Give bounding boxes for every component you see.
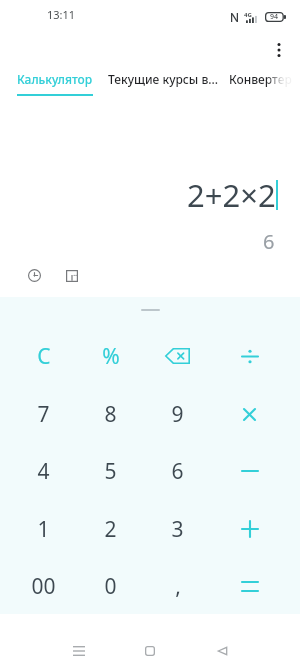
button[interactable]: Backspace <box>144 327 211 385</box>
staticText: 6 <box>171 457 184 486</box>
button[interactable]: 4 <box>10 442 77 500</box>
other: Plus <box>242 521 258 537</box>
staticText: 0 <box>104 572 117 601</box>
button[interactable]: , <box>144 557 211 615</box>
button[interactable]: Multiply <box>216 385 283 443</box>
staticText: 9 <box>171 400 184 429</box>
button[interactable]: Divide <box>216 327 283 385</box>
button[interactable]: Текущие курсы в... <box>108 71 219 87</box>
staticText: Калькулятор <box>17 71 93 87</box>
staticText: , <box>175 572 181 601</box>
staticText: 6 <box>263 228 275 255</box>
staticText: 4 <box>37 457 50 486</box>
button[interactable]: 0 <box>77 557 144 615</box>
button[interactable]: 7 <box>10 385 77 443</box>
button[interactable]: 8 <box>77 385 144 443</box>
button[interactable]: Recent apps <box>60 632 98 670</box>
button[interactable]: Keypad layout <box>58 262 85 289</box>
button[interactable]: % <box>77 327 144 385</box>
button[interactable]: C <box>10 327 77 385</box>
other: Minus <box>242 469 258 473</box>
other: Equals <box>242 581 258 592</box>
button[interactable]: 5 <box>77 442 144 500</box>
staticText: C <box>37 342 51 371</box>
button[interactable]: History <box>21 262 48 289</box>
button[interactable]: Minus <box>216 442 283 500</box>
button[interactable]: Конвертер <box>229 71 292 87</box>
staticText: 1 <box>37 515 50 544</box>
other: Divide <box>242 349 258 364</box>
staticText: 3 <box>171 515 184 544</box>
button[interactable]: 00 <box>10 557 77 615</box>
button[interactable]: More options <box>264 34 294 64</box>
staticText: 8 <box>104 400 117 429</box>
button[interactable]: 9 <box>144 385 211 443</box>
button[interactable]: Plus <box>216 500 283 558</box>
button[interactable]: 6 <box>144 442 211 500</box>
staticText: % <box>102 342 120 371</box>
button[interactable]: Back <box>203 632 241 670</box>
staticText: 5 <box>104 457 117 486</box>
staticText: 00 <box>31 572 56 601</box>
staticText: 7 <box>37 400 50 429</box>
button[interactable]: 1 <box>10 500 77 558</box>
staticText: 94 <box>270 12 279 22</box>
other: Multiply <box>243 408 256 421</box>
staticText: 2 <box>104 515 117 544</box>
button[interactable]: Калькулятор <box>17 71 93 96</box>
staticText: 2+2×2 <box>187 174 276 216</box>
button[interactable]: Equals <box>216 557 283 615</box>
button[interactable]: Home <box>131 632 169 670</box>
button[interactable]: 2 <box>77 500 144 558</box>
staticText: 4G <box>244 11 252 19</box>
button[interactable]: 3 <box>144 500 211 558</box>
staticText: 13:11 <box>47 7 76 22</box>
other: Backspace <box>165 348 190 364</box>
